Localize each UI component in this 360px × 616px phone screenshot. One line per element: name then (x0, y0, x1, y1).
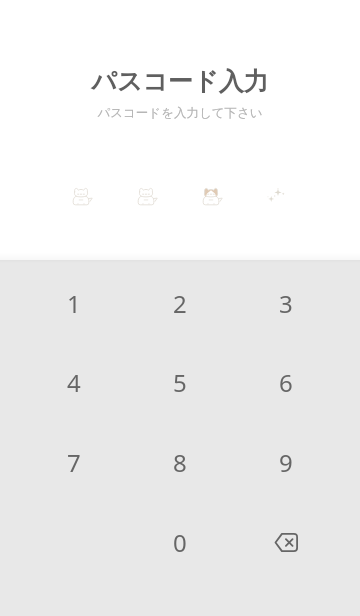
button[interactable]: 3 (233, 264, 339, 343)
button[interactable]: 0 (127, 502, 233, 582)
button[interactable]: 6 (233, 343, 339, 422)
staticText: 1 (67, 287, 81, 320)
button[interactable]: 1 (21, 264, 127, 343)
staticText: パスコード入力 (91, 66, 269, 97)
other: Backspace (270, 526, 302, 558)
button[interactable]: 2 (127, 264, 233, 343)
staticText: 2 (173, 287, 187, 320)
staticText: 7 (67, 446, 81, 479)
staticText: 6 (279, 366, 293, 399)
staticText: 8 (173, 446, 187, 479)
button[interactable]: 9 (233, 422, 339, 502)
button[interactable]: 4 (21, 343, 127, 422)
button[interactable]: 7 (21, 422, 127, 502)
staticText: 5 (173, 366, 187, 399)
staticText: 0 (173, 526, 187, 559)
button[interactable]: Backspace (233, 502, 339, 582)
staticText: 3 (279, 287, 293, 320)
staticText: 9 (279, 446, 293, 479)
button[interactable]: 5 (127, 343, 233, 422)
other: Passcode progress (0, 187, 357, 205)
staticText: 4 (67, 366, 81, 399)
button[interactable]: 8 (127, 422, 233, 502)
staticText: パスコードを入力して下さい (97, 105, 263, 121)
